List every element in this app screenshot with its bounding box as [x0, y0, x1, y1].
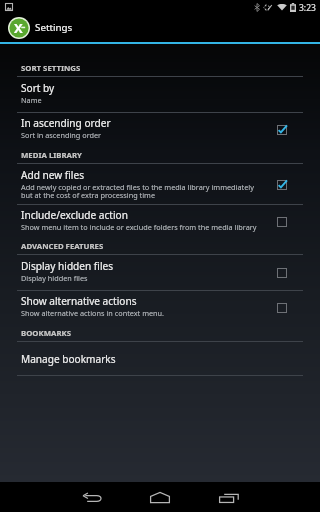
button[interactable]: Sort by — [21, 81, 320, 95]
staticText: Show menu item to include or exclude fol… — [21, 222, 257, 232]
button[interactable]: Checked — [277, 125, 289, 137]
staticText: but at the cost of extra processing time — [21, 190, 156, 200]
staticText: In ascending order — [21, 116, 111, 130]
staticText: 3:23 — [299, 2, 316, 14]
button[interactable]: Unchecked — [277, 268, 289, 280]
staticText: Sort by — [21, 81, 55, 95]
staticText: Sort in ascending order — [21, 130, 102, 140]
button[interactable]: Checked — [277, 180, 289, 192]
button[interactable]: Unchecked — [277, 303, 289, 315]
button[interactable]: Back — [71, 486, 113, 508]
staticText: MEDIA LIBRARY — [21, 150, 82, 161]
staticText: ADVANCED FEATURES — [21, 241, 104, 252]
staticText: Settings — [35, 21, 73, 34]
staticText: Display hidden files — [21, 259, 114, 273]
button[interactable]: Home — [139, 486, 181, 508]
button[interactable]: Show alternative actions — [21, 294, 320, 308]
staticText: Include/exclude action — [21, 208, 128, 222]
button[interactable]: Manage bookmarks — [21, 352, 320, 366]
button[interactable]: Display hidden files — [21, 259, 320, 273]
button[interactable]: X — [0, 14, 320, 42]
staticText: Show alternative actions — [21, 294, 137, 308]
staticText: Add new files — [21, 168, 84, 182]
staticText: Name — [21, 95, 42, 105]
staticText: Manage bookmarks — [21, 352, 116, 366]
button[interactable]: Recent apps — [208, 486, 250, 508]
staticText: BOOKMARKS — [21, 328, 72, 339]
button[interactable]: Add new files — [21, 168, 320, 182]
staticText: Show alternative actions in context menu… — [21, 308, 165, 318]
button[interactable]: In ascending order — [21, 116, 320, 130]
button[interactable]: Include/exclude action — [21, 208, 320, 222]
staticText: X — [14, 19, 23, 37]
button[interactable]: Unchecked — [277, 217, 289, 229]
staticText: Add newly copied or extracted files to t… — [21, 182, 254, 192]
staticText: Display hidden files — [21, 273, 88, 283]
staticText: SORT SETTINGS — [21, 63, 81, 74]
